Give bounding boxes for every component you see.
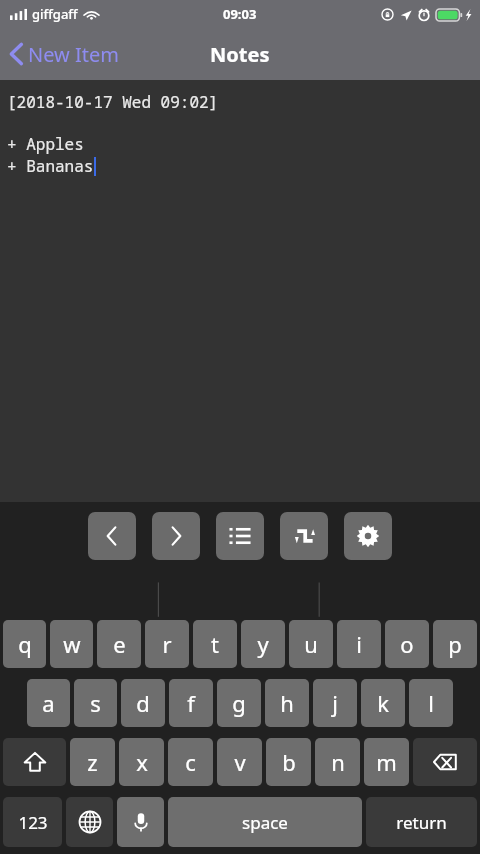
staticText: m [376,747,397,777]
button[interactable]: t [193,620,237,668]
button[interactable]: c [168,738,213,786]
staticText: v [234,747,246,777]
button[interactable]: e [97,620,141,668]
button[interactable]: New line [280,512,328,560]
button[interactable]: u [289,620,333,668]
button[interactable]: v [217,738,262,786]
staticText: return [396,811,447,834]
button[interactable]: h [265,679,309,727]
button[interactable]: j [313,679,357,727]
staticText: s [90,688,101,718]
staticText: l [428,688,434,718]
staticText: 09:03 [223,5,257,23]
staticText: r [162,629,172,659]
button[interactable]: Dictate [117,797,164,847]
staticText: i [356,629,362,659]
button[interactable]: p [433,620,477,668]
staticText: y [257,629,269,659]
staticText: space [242,811,288,834]
staticText: z [87,747,98,777]
button[interactable]: b [266,738,311,786]
button[interactable]: return [366,797,477,847]
staticText: x [136,747,148,777]
button[interactable]: Backspace [413,738,477,786]
staticText: h [280,688,294,718]
staticText: u [304,629,318,659]
button[interactable]: g [217,679,261,727]
button[interactable]: w [50,620,93,668]
staticText: Notes [210,41,270,68]
button[interactable]: r [145,620,189,668]
button[interactable]: q [3,620,46,668]
button[interactable]: Switch keyboard [66,797,113,847]
staticText: giffgaff [32,5,78,23]
staticText: j [332,688,338,718]
button[interactable]: y [241,620,285,668]
button[interactable]: New Item [0,28,131,80]
button[interactable]: x [119,738,164,786]
button[interactable]: f [169,679,213,727]
button[interactable]: l [409,679,453,727]
staticText: a [42,688,55,718]
button[interactable]: k [361,679,405,727]
staticText: f [187,688,195,718]
button[interactable]: Settings [344,512,392,560]
button[interactable]: Next [152,512,200,560]
button[interactable]: a [27,679,70,727]
staticText: w [63,629,81,659]
button[interactable]: i [337,620,381,668]
button[interactable]: s [74,679,117,727]
button[interactable]: 123 [3,797,62,847]
button[interactable]: Previous [88,512,136,560]
button[interactable]: Shift [3,738,66,786]
staticText: e [113,629,126,659]
staticText: d [136,688,150,718]
button[interactable]: space [168,797,362,847]
staticText: + Bananas [7,155,94,177]
staticText: n [331,747,345,777]
button[interactable]: List [216,512,264,560]
staticText: q [18,629,32,659]
button[interactable]: m [364,738,409,786]
staticText: g [232,688,246,718]
staticText: o [400,629,414,659]
staticText: [2018-10-17 Wed 09:02] [7,91,219,113]
staticText: p [448,629,462,659]
staticText: c [185,747,196,777]
staticText: k [377,688,389,718]
staticText: New Item [28,41,119,68]
staticText: t [211,629,219,659]
button[interactable]: [2018-10-17 Wed 09:02] [0,80,480,502]
staticText: 123 [18,811,48,834]
button[interactable]: d [121,679,165,727]
staticText: b [282,747,296,777]
button[interactable]: z [70,738,115,786]
staticText: + Apples [7,133,84,155]
button[interactable]: n [315,738,360,786]
button[interactable]: o [385,620,429,668]
